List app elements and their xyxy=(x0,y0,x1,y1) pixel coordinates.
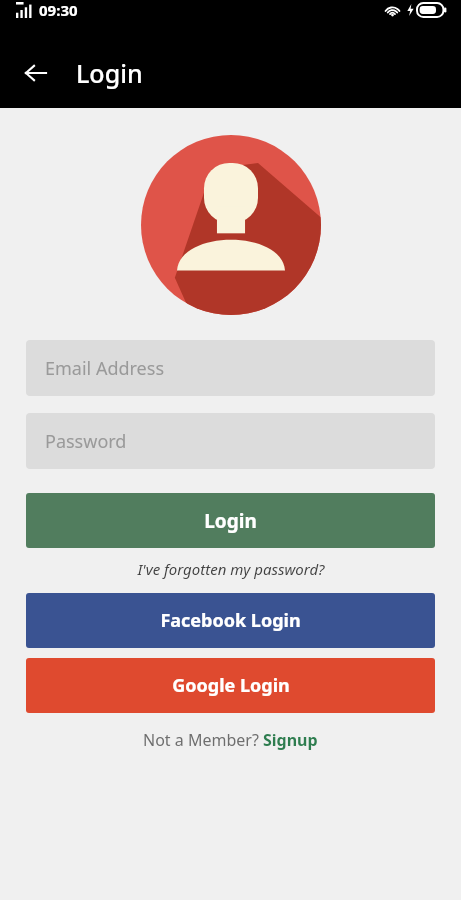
staticText: Email Address xyxy=(45,356,165,381)
button[interactable]: Back xyxy=(14,51,58,95)
button[interactable]: Signup xyxy=(263,729,318,751)
staticText: Not a Member? xyxy=(143,729,263,751)
staticText: Facebook Login xyxy=(160,608,301,633)
button[interactable]: Login xyxy=(26,493,435,548)
staticText: Login xyxy=(204,508,257,534)
button[interactable]: Password xyxy=(26,413,435,469)
button[interactable]: I've forgotten my password? xyxy=(137,559,325,579)
button[interactable]: Google Login xyxy=(26,658,435,713)
staticText: 09:30 xyxy=(39,0,78,20)
button[interactable]: Email Address xyxy=(26,340,435,396)
staticText: Password xyxy=(45,429,127,454)
staticText: Google Login xyxy=(172,673,290,698)
staticText: Login xyxy=(76,56,143,90)
button[interactable]: Facebook Login xyxy=(26,593,435,648)
